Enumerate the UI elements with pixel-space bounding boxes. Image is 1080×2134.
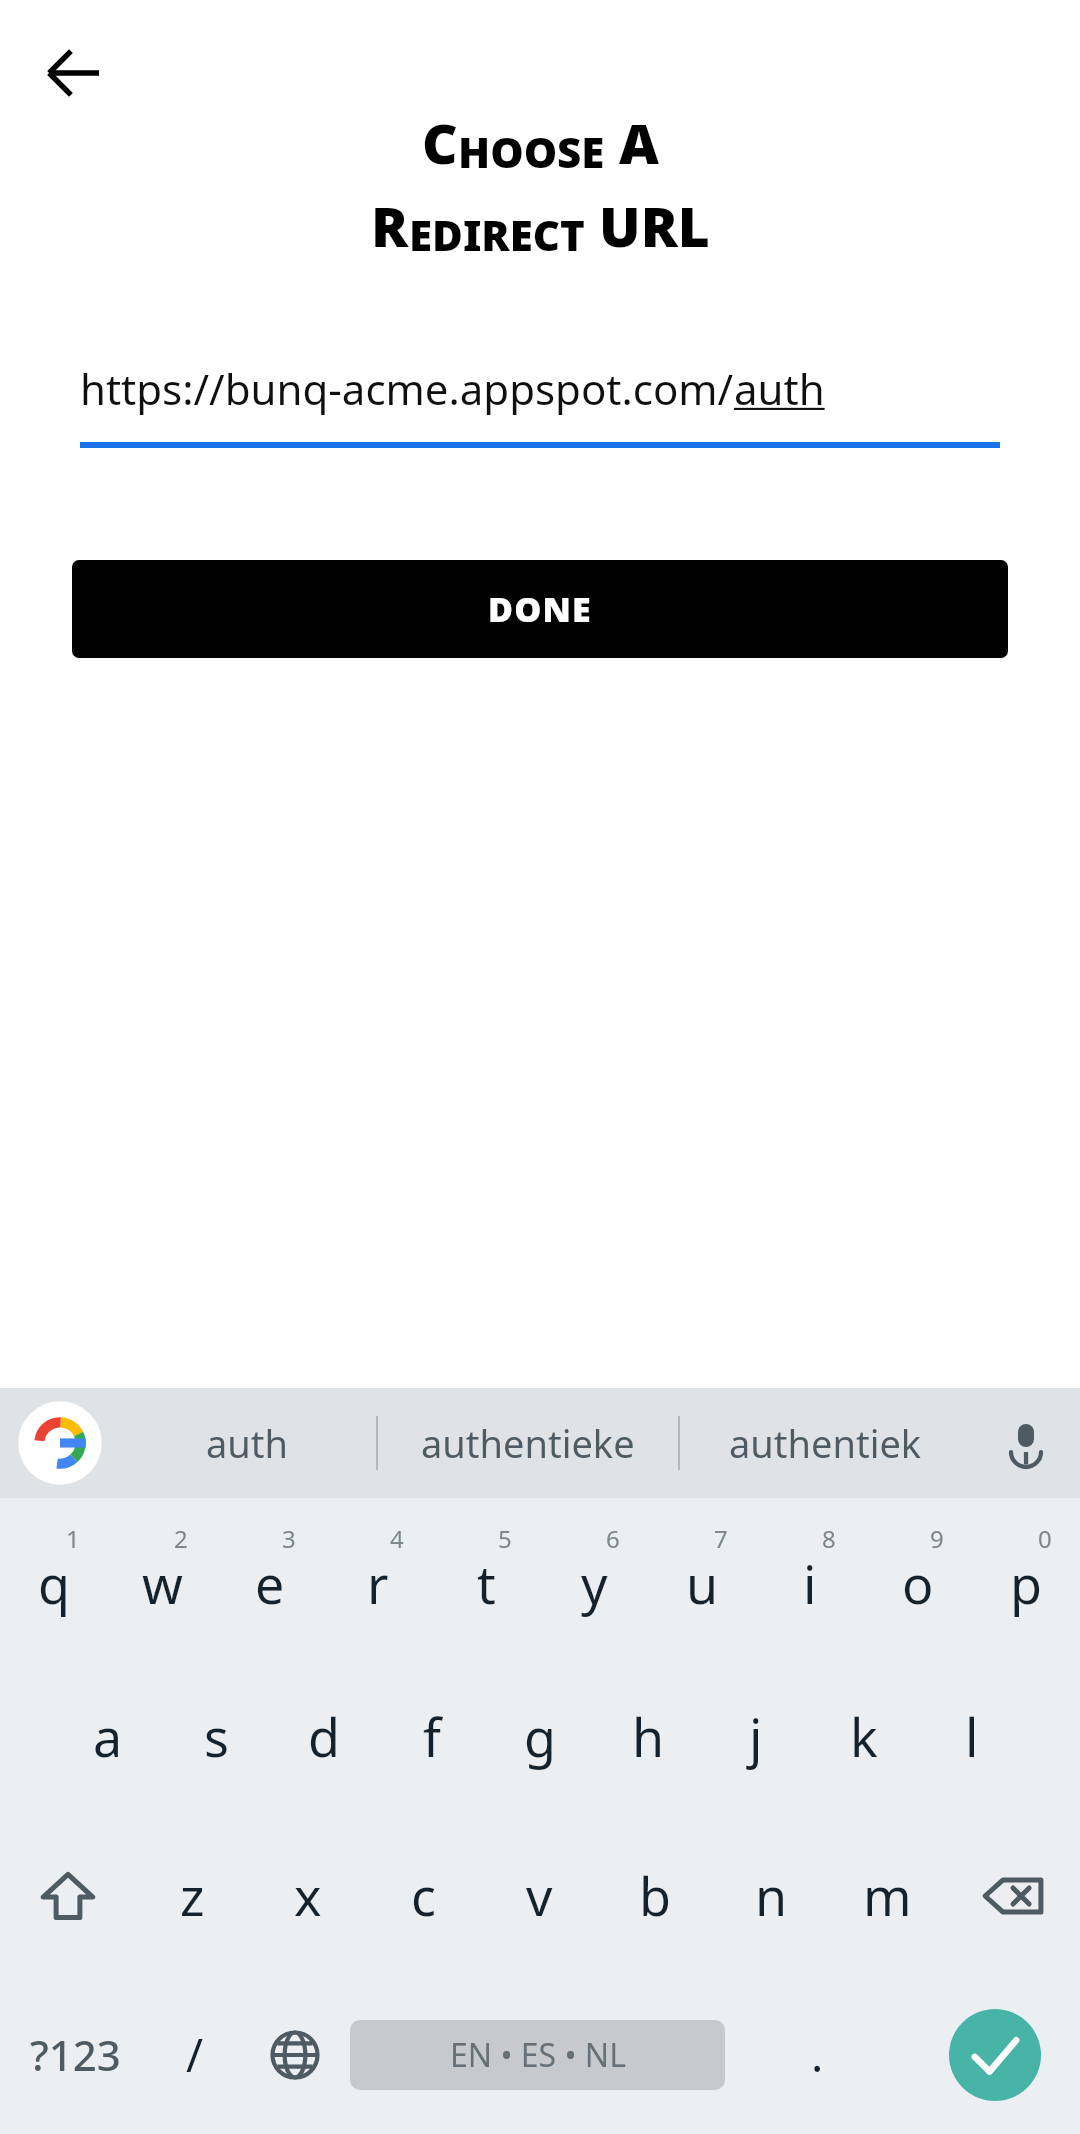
staticText: 1 xyxy=(66,1522,80,1555)
button[interactable]: v xyxy=(481,1816,597,1975)
staticText: R xyxy=(371,188,409,263)
staticText: l xyxy=(965,1701,979,1772)
button[interactable]: z xyxy=(135,1816,250,1975)
button[interactable]: l xyxy=(918,1657,1026,1816)
staticText: 9 xyxy=(930,1522,944,1555)
staticText: 2 xyxy=(174,1522,188,1555)
staticText: 0 xyxy=(1038,1522,1052,1555)
staticText: i xyxy=(803,1548,817,1619)
staticText: c xyxy=(411,1860,436,1931)
button[interactable]: 8 xyxy=(756,1498,864,1657)
button[interactable]: 3 xyxy=(216,1498,324,1657)
staticText: 4 xyxy=(390,1522,404,1555)
staticText: k xyxy=(850,1701,878,1772)
button[interactable]: Change language xyxy=(240,1975,350,2134)
staticText: authentiek xyxy=(729,1417,922,1469)
button[interactable]: Backspace xyxy=(945,1816,1080,1975)
button[interactable]: / xyxy=(150,1975,240,2134)
button[interactable]: h xyxy=(594,1657,702,1816)
button[interactable]: b xyxy=(597,1816,713,1975)
staticText: DONE xyxy=(488,586,592,632)
staticText: URL xyxy=(599,188,710,263)
staticText: s xyxy=(204,1701,229,1772)
button[interactable]: Shift xyxy=(0,1816,135,1975)
button[interactable]: s xyxy=(162,1657,270,1816)
button[interactable]: g xyxy=(486,1657,594,1816)
staticText: n xyxy=(755,1860,788,1931)
button[interactable]: 0 xyxy=(972,1498,1080,1657)
staticText: o xyxy=(902,1548,934,1619)
staticText: j xyxy=(749,1701,763,1772)
button[interactable]: j xyxy=(702,1657,810,1816)
button[interactable]: f xyxy=(378,1657,486,1816)
staticText: ?123 xyxy=(30,2026,121,2083)
button[interactable]: k xyxy=(810,1657,918,1816)
staticText: auth xyxy=(206,1417,289,1469)
staticText: h xyxy=(632,1701,665,1772)
staticText: https://bunq-acme.appspot.com/ xyxy=(80,360,734,417)
staticText: v xyxy=(526,1860,553,1931)
staticText: g xyxy=(524,1701,556,1772)
button[interactable]: 1 xyxy=(0,1498,108,1657)
staticText: a xyxy=(93,1701,123,1772)
button[interactable]: d xyxy=(270,1657,378,1816)
staticText: f xyxy=(423,1701,441,1772)
staticText: EN • ES • NL xyxy=(450,2033,626,2077)
staticText: q xyxy=(38,1548,70,1619)
button[interactable]: Enter xyxy=(910,1975,1080,2134)
staticText: w xyxy=(142,1548,183,1619)
staticText: A xyxy=(619,105,659,180)
button[interactable]: Back xyxy=(36,36,110,110)
staticText: r xyxy=(367,1548,389,1619)
button[interactable]: n xyxy=(713,1816,829,1975)
staticText: x xyxy=(294,1860,322,1931)
staticText: . xyxy=(811,2023,824,2086)
button[interactable]: 4 xyxy=(324,1498,432,1657)
button[interactable]: 7 xyxy=(648,1498,756,1657)
staticText: 8 xyxy=(822,1522,836,1555)
staticText: C xyxy=(422,105,458,180)
button[interactable]: . xyxy=(725,1975,910,2134)
button[interactable]: Voice input xyxy=(986,1403,1066,1483)
staticText: t xyxy=(477,1548,496,1619)
staticText: 3 xyxy=(282,1522,296,1555)
staticText: m xyxy=(863,1860,912,1931)
staticText: y xyxy=(581,1548,608,1619)
button[interactable]: c xyxy=(365,1816,481,1975)
staticText: 7 xyxy=(714,1522,728,1555)
staticText: e xyxy=(255,1548,285,1619)
button[interactable]: auth xyxy=(118,1388,376,1498)
button[interactable]: 2 xyxy=(108,1498,216,1657)
button[interactable]: authentieke xyxy=(378,1388,678,1498)
button[interactable]: https://bunq-acme.appspot.com/ xyxy=(80,360,1000,448)
staticText: p xyxy=(1010,1548,1042,1619)
button[interactable]: a xyxy=(54,1657,162,1816)
button[interactable]: EN • ES • NL xyxy=(350,2020,725,2090)
button[interactable]: Google search xyxy=(16,1399,104,1487)
staticText: auth xyxy=(734,360,825,417)
staticText: / xyxy=(186,2023,204,2086)
button[interactable]: authentiek xyxy=(680,1388,970,1498)
button[interactable]: x xyxy=(250,1816,365,1975)
staticText: HOOSE xyxy=(458,123,605,180)
staticText: u xyxy=(686,1548,719,1619)
staticText: b xyxy=(639,1860,671,1931)
staticText: 6 xyxy=(606,1522,620,1555)
staticText: EDIRECT xyxy=(409,206,585,263)
staticText: 5 xyxy=(498,1522,512,1555)
button[interactable]: 9 xyxy=(864,1498,972,1657)
staticText: d xyxy=(308,1701,340,1772)
button[interactable]: ?123 xyxy=(0,1975,150,2134)
button[interactable]: DONE xyxy=(72,560,1008,658)
button[interactable]: 5 xyxy=(432,1498,540,1657)
button[interactable]: m xyxy=(829,1816,945,1975)
button[interactable]: 6 xyxy=(540,1498,648,1657)
staticText: authentieke xyxy=(421,1417,635,1469)
staticText: z xyxy=(180,1860,205,1931)
